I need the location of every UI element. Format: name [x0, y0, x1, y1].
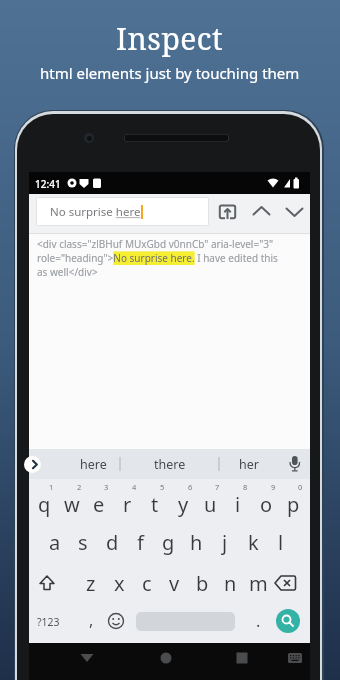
button[interactable] — [152, 645, 180, 671]
staticText: y — [178, 491, 189, 518]
staticText: 9 — [271, 482, 276, 492]
button[interactable]: c — [132, 569, 162, 597]
button[interactable]: e — [84, 490, 114, 518]
button[interactable]: her — [219, 449, 279, 479]
staticText: <div class="zlBHuf MUxGbd v0nnCb" aria-l… — [37, 237, 274, 251]
button[interactable]: p — [278, 490, 308, 518]
button[interactable] — [24, 456, 41, 473]
button[interactable]: s — [68, 528, 98, 556]
staticText: here — [80, 456, 107, 473]
button[interactable] — [31, 570, 63, 596]
staticText: l — [278, 529, 284, 556]
staticText: 3 — [104, 482, 109, 492]
button[interactable]: r — [112, 490, 142, 518]
staticText: her — [239, 456, 259, 473]
button[interactable]: n — [215, 569, 245, 597]
button[interactable]: a — [40, 528, 70, 556]
button[interactable] — [228, 645, 256, 671]
button[interactable]: . — [243, 607, 273, 635]
staticText: c — [142, 570, 152, 597]
button[interactable] — [284, 202, 305, 221]
button[interactable] — [218, 202, 237, 221]
staticText: m — [249, 570, 268, 597]
staticText: 6 — [188, 482, 193, 492]
button[interactable]: w — [57, 490, 87, 518]
staticText: g — [162, 529, 175, 556]
staticText: 8 — [243, 482, 248, 492]
staticText: html elements just by touching them — [40, 63, 300, 83]
staticText: a — [49, 529, 61, 556]
button[interactable] — [73, 645, 101, 671]
button[interactable]: h — [181, 528, 211, 556]
staticText: p — [287, 491, 300, 518]
staticText: q — [38, 491, 51, 518]
staticText: u — [204, 491, 217, 518]
staticText: r — [123, 491, 132, 518]
staticText: s — [78, 529, 88, 556]
staticText: 7 — [215, 482, 220, 492]
button[interactable]: u — [195, 490, 225, 518]
button[interactable]: d — [97, 528, 127, 556]
button[interactable]: y — [168, 490, 198, 518]
staticText: . — [256, 610, 261, 632]
button[interactable]: v — [159, 569, 189, 597]
staticText: b — [196, 570, 209, 597]
button[interactable]: k — [238, 528, 268, 556]
button[interactable]: t — [140, 490, 170, 518]
staticText: d — [106, 529, 119, 556]
staticText: role="heading">No surprise here. I have … — [37, 251, 278, 265]
staticText: f — [137, 529, 144, 556]
staticText: k — [248, 529, 259, 556]
staticText: No surprise here — [50, 204, 141, 220]
staticText: x — [114, 570, 125, 597]
button[interactable]: z — [76, 569, 106, 597]
staticText: t — [151, 491, 159, 518]
button[interactable] — [251, 202, 272, 221]
staticText: 12:41 — [35, 177, 61, 191]
staticText: as well</div> — [37, 265, 98, 279]
staticText: 2 — [77, 482, 82, 492]
staticText: 0 — [298, 482, 303, 492]
staticText: 5 — [160, 482, 165, 492]
staticText: j — [222, 529, 228, 556]
button[interactable] — [269, 570, 301, 596]
staticText: w — [64, 491, 80, 518]
button[interactable]: g — [153, 528, 183, 556]
button[interactable] — [105, 610, 127, 632]
staticText: 4 — [132, 482, 137, 492]
button[interactable]: o — [251, 490, 281, 518]
button[interactable]: here — [58, 449, 129, 479]
button[interactable]: l — [266, 528, 296, 556]
button[interactable]: there — [120, 449, 219, 479]
staticText: ?123 — [37, 615, 60, 629]
staticText: Inspect — [116, 18, 224, 59]
button[interactable]: ?123 — [31, 609, 65, 635]
button[interactable]: q — [29, 490, 59, 518]
staticText: there — [154, 456, 186, 473]
button[interactable]: m — [243, 569, 273, 597]
button[interactable]: j — [210, 528, 240, 556]
button[interactable] — [281, 645, 309, 671]
staticText: h — [190, 529, 203, 556]
button[interactable]: x — [104, 569, 134, 597]
staticText: , — [89, 609, 94, 631]
button[interactable]: No surprise here — [36, 197, 209, 226]
staticText: e — [93, 491, 105, 518]
button[interactable]: i — [223, 490, 253, 518]
button[interactable]: b — [187, 569, 217, 597]
button[interactable]: , — [76, 606, 106, 634]
staticText: v — [169, 570, 180, 597]
staticText: o — [260, 491, 273, 518]
button[interactable]: f — [125, 528, 155, 556]
staticText: i — [235, 491, 241, 518]
staticText: z — [86, 570, 96, 597]
staticText: n — [224, 570, 237, 597]
button[interactable] — [276, 609, 300, 633]
staticText: 1 — [49, 482, 54, 492]
